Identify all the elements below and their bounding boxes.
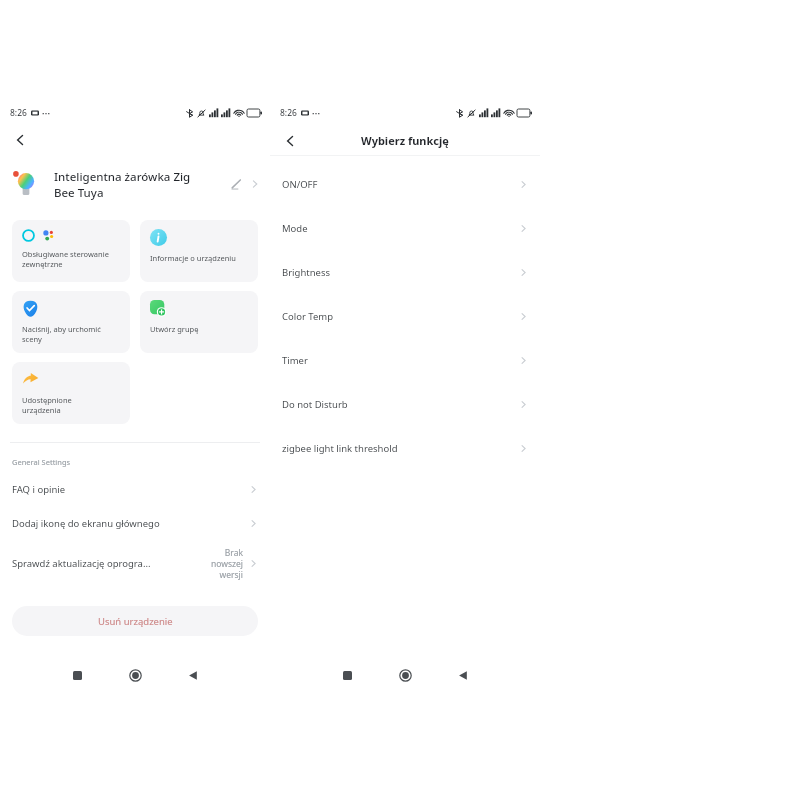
staticText: Inteligentna żarówka Zig Bee Tuya	[54, 169, 230, 200]
staticText: 8:26	[280, 107, 297, 119]
staticText: General Settings	[12, 457, 71, 467]
button[interactable]: Recents	[57, 660, 97, 690]
button[interactable]: Obsługiwane sterowanie zewnętrzne	[12, 220, 130, 282]
staticText: FAQ i opinie	[12, 483, 249, 496]
staticText: Color Temp	[282, 310, 519, 323]
staticText: Wybierz funkcję	[361, 133, 449, 148]
button[interactable]: ON/OFF	[270, 162, 540, 206]
button[interactable]: Home	[115, 660, 155, 690]
staticText: Usuń urządzenie	[98, 615, 173, 628]
staticText: Do not Disturb	[282, 398, 519, 411]
button[interactable]: Mode	[270, 206, 540, 250]
button[interactable]: Inteligentna żarówka Zig Bee Tuya	[0, 162, 270, 206]
button[interactable]: Do not Disturb	[270, 382, 540, 426]
staticText: Timer	[282, 354, 519, 367]
staticText: Utwórz grupę	[150, 324, 199, 334]
button[interactable]: Informacje o urządzeniu	[140, 220, 258, 282]
button[interactable]: Back	[173, 660, 213, 690]
staticText: 8:26	[10, 107, 27, 119]
button[interactable]: Back	[270, 126, 310, 155]
staticText: Brightness	[282, 266, 519, 279]
button[interactable]: Color Temp	[270, 294, 540, 338]
button[interactable]: Brightness	[270, 250, 540, 294]
button[interactable]: Naciśnij, aby urchomić sceny	[12, 291, 130, 353]
staticText: ON/OFF	[282, 178, 519, 191]
button[interactable]: zigbee light link threshold	[270, 426, 540, 470]
button[interactable]: Recents	[327, 660, 367, 690]
button[interactable]: Back	[443, 660, 483, 690]
staticText: zigbee light link threshold	[282, 442, 519, 455]
button[interactable]: Sprawdź aktualizację oprogra...	[0, 547, 270, 580]
staticText: Informacje o urządzeniu	[150, 253, 236, 263]
button[interactable]: Dodaj ikonę do ekranu głównego	[0, 517, 270, 530]
staticText: Sprawdź aktualizację oprogra...	[12, 557, 211, 570]
staticText: Mode	[282, 222, 519, 235]
staticText: Dodaj ikonę do ekranu głównego	[12, 517, 249, 530]
button[interactable]: Usuń urządzenie	[12, 606, 258, 636]
button[interactable]: Udostępnione urządzenia	[12, 362, 130, 424]
button[interactable]: Home	[385, 660, 425, 690]
button[interactable]: Back	[0, 126, 40, 154]
staticText: Udostępnione urządzenia	[22, 395, 72, 415]
staticText: Obsługiwane sterowanie zewnętrzne	[22, 249, 109, 269]
button[interactable]: Timer	[270, 338, 540, 382]
button[interactable]: FAQ i opinie	[0, 483, 270, 496]
staticText: Naciśnij, aby urchomić sceny	[22, 324, 101, 344]
staticText: Brak nowszej wersji	[211, 547, 243, 580]
button[interactable]: Utwórz grupę	[140, 291, 258, 353]
